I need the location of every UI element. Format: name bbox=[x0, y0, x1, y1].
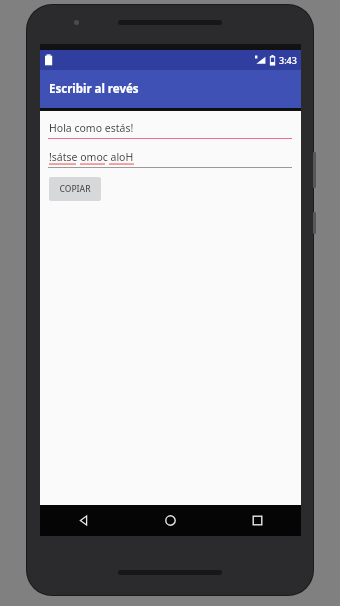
button[interactable]: Home bbox=[127, 505, 214, 536]
staticText: Hola como estás! bbox=[49, 121, 134, 135]
button[interactable]: COPIAR bbox=[49, 177, 101, 201]
staticText: COPIAR bbox=[59, 183, 91, 195]
staticText: !sátse omoc aloH bbox=[49, 150, 134, 164]
staticText: 3:43 bbox=[279, 54, 297, 66]
button[interactable]: Hola como estás! bbox=[48, 121, 292, 139]
button[interactable]: Back bbox=[40, 505, 127, 536]
button[interactable]: Recent apps bbox=[214, 505, 301, 536]
button[interactable]: !sátse omoc aloH bbox=[48, 150, 292, 168]
staticText: Escribir al revés bbox=[49, 81, 139, 97]
